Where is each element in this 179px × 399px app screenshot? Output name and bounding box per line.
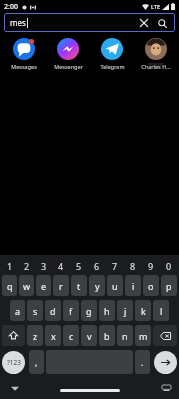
staticText: l — [160, 305, 163, 317]
button[interactable]: Enter — [154, 351, 177, 374]
button[interactable]: 9 — [142, 259, 160, 272]
staticText: o — [148, 280, 154, 292]
staticText: r — [59, 280, 63, 292]
staticText: 5 — [76, 260, 82, 272]
button[interactable]: o — [143, 275, 159, 296]
other: Shift — [9, 331, 18, 340]
staticText: ?123 — [7, 358, 21, 367]
staticText: mes — [10, 17, 26, 28]
staticText: . — [141, 357, 144, 368]
staticText: , — [35, 357, 38, 368]
button[interactable]: ?123 — [2, 351, 25, 374]
staticText: x — [51, 330, 56, 342]
button[interactable]: Shift — [2, 325, 25, 346]
button[interactable]: s — [27, 300, 43, 321]
button[interactable]: Messenger — [46, 37, 90, 71]
staticText: 2 — [24, 260, 30, 272]
button[interactable]: Change keyboard — [159, 381, 173, 395]
button[interactable]: c — [63, 325, 79, 346]
button[interactable]: e — [36, 275, 51, 296]
button[interactable]: Messages — [2, 37, 46, 71]
staticText: 3 — [41, 260, 47, 272]
button[interactable]: g — [81, 300, 97, 321]
button[interactable]: x — [45, 325, 61, 346]
button[interactable]: q — [2, 275, 17, 296]
staticText: p — [166, 280, 172, 292]
button[interactable]: r — [53, 275, 69, 296]
staticText: 9 — [148, 260, 154, 272]
staticText: u — [112, 280, 118, 292]
staticText: k — [141, 305, 146, 317]
staticText: Charles H... — [141, 63, 171, 70]
button[interactable]: Charles H... — [134, 37, 177, 71]
staticText: Messenger — [54, 63, 83, 70]
button[interactable]: d — [45, 300, 61, 321]
staticText: s — [33, 305, 38, 317]
button[interactable]: h — [99, 300, 115, 321]
staticText: h — [104, 305, 110, 317]
staticText: i — [132, 280, 135, 292]
button[interactable]: k — [135, 300, 151, 321]
button[interactable]: 3 — [35, 259, 52, 272]
button[interactable]: Backspace — [153, 325, 177, 346]
button[interactable]: 8 — [124, 259, 142, 272]
button[interactable]: Hide keyboard — [8, 381, 22, 395]
button[interactable]: z — [27, 325, 43, 346]
button[interactable]: 1 — [1, 259, 18, 272]
staticText: 7 — [112, 260, 118, 272]
button[interactable]: Search — [155, 16, 169, 30]
button[interactable]: p — [161, 275, 177, 296]
staticText: y — [95, 280, 100, 292]
button[interactable]: n — [117, 325, 133, 346]
button[interactable]: t — [71, 275, 87, 296]
staticText: a — [15, 305, 21, 317]
staticText: d — [50, 305, 56, 317]
button[interactable]: 2 — [18, 259, 35, 272]
button[interactable]: mes — [4, 13, 175, 32]
button[interactable]: Clear — [137, 16, 151, 30]
staticText: z — [33, 330, 38, 342]
button[interactable]: i — [125, 275, 141, 296]
button[interactable]: 4 — [52, 259, 70, 272]
staticText: t — [77, 280, 81, 292]
button[interactable]: 6 — [88, 259, 106, 272]
button[interactable]: f — [63, 300, 79, 321]
staticText: v — [87, 330, 92, 342]
staticText: b — [104, 330, 110, 342]
button[interactable]: y — [89, 275, 105, 296]
staticText: Messages — [11, 63, 37, 70]
button[interactable]: b — [99, 325, 115, 346]
staticText: 0 — [166, 260, 172, 272]
staticText: m — [139, 330, 148, 342]
staticText: LTE — [151, 3, 160, 10]
button[interactable]: j — [117, 300, 133, 321]
button[interactable]: , — [29, 350, 44, 374]
staticText: e — [41, 280, 47, 292]
staticText: 6 — [94, 260, 100, 272]
button[interactable]: Telegram — [90, 37, 134, 71]
staticText: Telegram — [100, 63, 125, 70]
button[interactable]: l — [153, 300, 169, 321]
other: Backspace — [160, 332, 171, 340]
button[interactable]: 5 — [70, 259, 88, 272]
staticText: w — [23, 280, 31, 292]
button[interactable]: u — [107, 275, 123, 296]
button[interactable]: a — [10, 300, 25, 321]
button[interactable]: . — [135, 350, 150, 374]
button[interactable]: v — [81, 325, 97, 346]
staticText: 4 — [58, 260, 64, 272]
staticText: q — [7, 280, 13, 292]
button[interactable]: 7 — [106, 259, 124, 272]
staticText: c — [69, 330, 74, 342]
staticText: g — [86, 305, 92, 317]
button[interactable]: m — [135, 325, 151, 346]
staticText: 2:00 — [4, 2, 18, 12]
button[interactable]: 0 — [160, 259, 178, 272]
staticText: 8 — [130, 260, 136, 272]
staticText: 1 — [7, 260, 13, 272]
staticText: n — [122, 330, 128, 342]
staticText: j — [124, 305, 127, 317]
button[interactable]: w — [19, 275, 34, 296]
staticText: f — [69, 305, 73, 317]
